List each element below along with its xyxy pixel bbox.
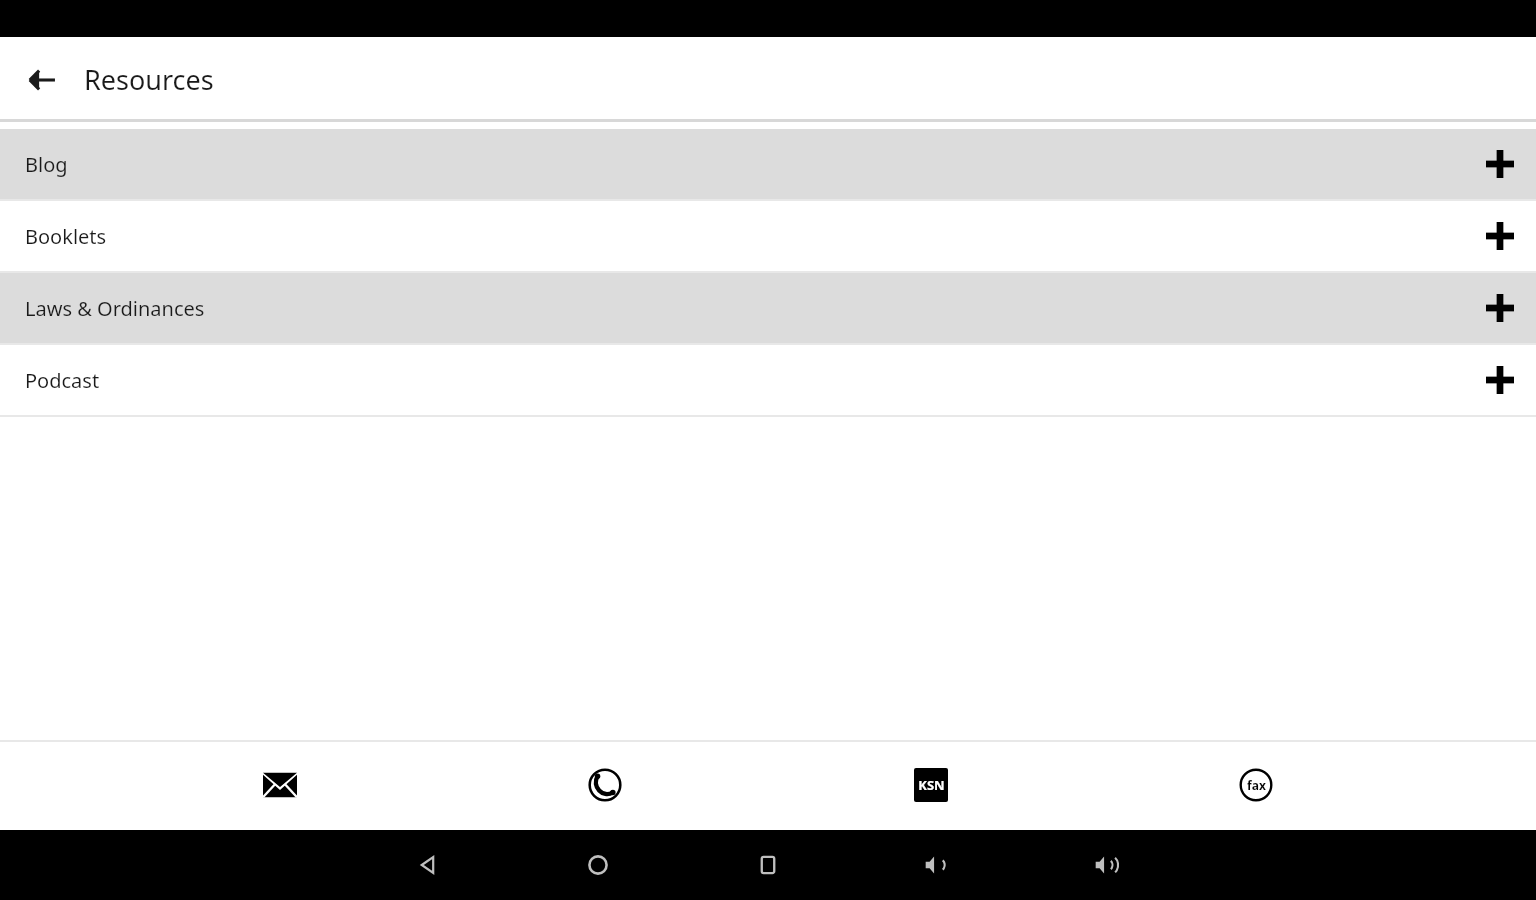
button[interactable]: Recents xyxy=(740,837,796,893)
button[interactable]: Podcast xyxy=(0,345,1536,415)
staticText: Resources xyxy=(84,61,214,98)
button[interactable]: Laws & Ordinances xyxy=(0,273,1536,343)
staticText: Laws & Ordinances xyxy=(25,295,205,322)
button[interactable]: Booklets xyxy=(0,201,1536,271)
button[interactable]: KSN xyxy=(901,755,961,815)
button[interactable]: Email xyxy=(250,755,310,815)
other: Expand Laws & Ordinances xyxy=(1472,280,1528,336)
other: Expand Blog xyxy=(1472,136,1528,192)
button[interactable]: Fax xyxy=(1226,755,1286,815)
staticText: Podcast xyxy=(25,367,100,394)
button[interactable]: Volume down xyxy=(910,837,966,893)
button[interactable]: Blog xyxy=(0,129,1536,199)
staticText: KSN xyxy=(918,776,945,794)
button[interactable]: Call xyxy=(575,755,635,815)
other: Expand Podcast xyxy=(1472,352,1528,408)
button[interactable]: Back xyxy=(16,54,68,106)
staticText: Booklets xyxy=(25,223,107,250)
button[interactable]: Back xyxy=(400,837,456,893)
button[interactable]: Volume up xyxy=(1080,837,1136,893)
other: Expand Booklets xyxy=(1472,208,1528,264)
staticText: Blog xyxy=(25,151,68,178)
staticText: fax xyxy=(1247,777,1266,793)
button[interactable]: Home xyxy=(570,837,626,893)
